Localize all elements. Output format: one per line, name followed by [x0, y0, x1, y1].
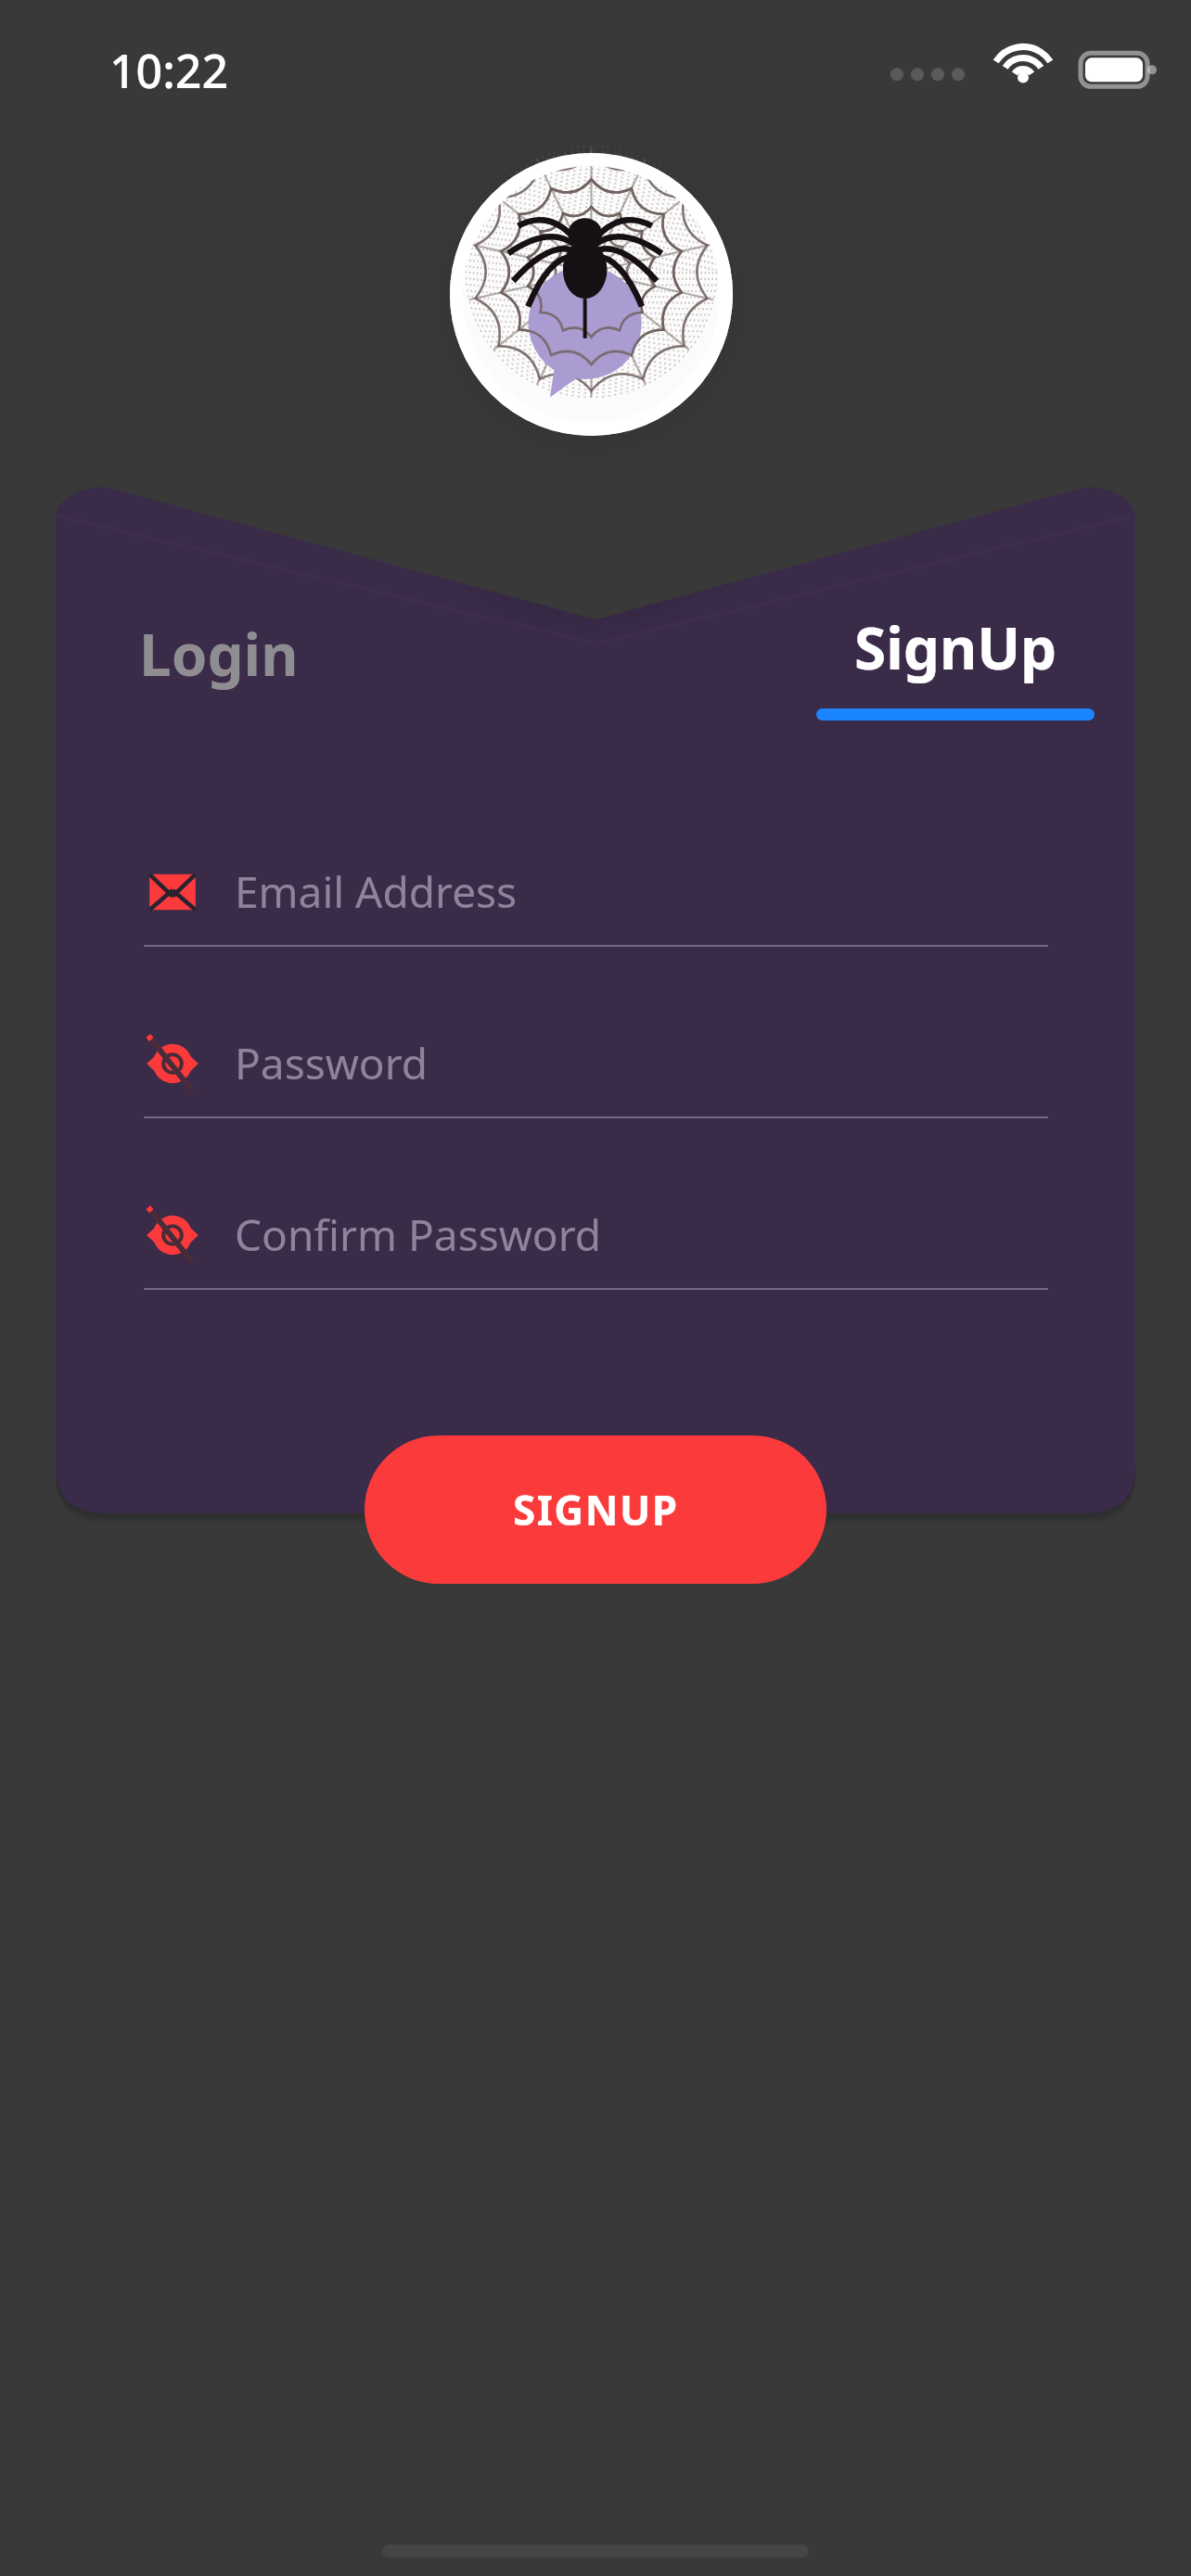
staticText: SIGNUP [513, 1482, 679, 1537]
staticText: Login [139, 615, 299, 693]
staticText: SignUp [854, 608, 1057, 686]
staticText: 10:22 [109, 39, 228, 102]
other: App logo [450, 153, 733, 436]
button[interactable]: Login [121, 607, 317, 700]
button[interactable]: Show confirm password [144, 1205, 1048, 1290]
button[interactable]: Email Address [144, 862, 1048, 947]
other: Email Address [144, 863, 201, 921]
button[interactable]: Show password [144, 1034, 1048, 1118]
staticText: Confirm Password [235, 1205, 602, 1264]
staticText: Email Address [235, 862, 518, 921]
button[interactable]: SIGNUP [365, 1435, 826, 1584]
other: Show confirm password [144, 1206, 201, 1264]
other: Show password [144, 1035, 201, 1092]
staticText: Password [235, 1034, 429, 1092]
button[interactable]: SignUp [798, 601, 1113, 728]
